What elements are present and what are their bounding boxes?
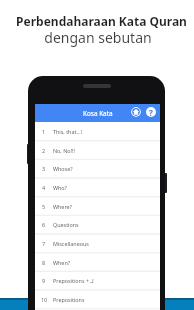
staticText: dengan sebutan: [44, 28, 152, 47]
staticText: 2: [42, 147, 46, 154]
button[interactable]: Home: [131, 107, 141, 117]
staticText: This, that...!: [53, 128, 83, 135]
staticText: Prepositions + لـ: [53, 277, 94, 284]
button[interactable]: 10: [35, 290, 160, 309]
button[interactable]: 1: [35, 122, 160, 141]
staticText: Kosa Kata: [83, 109, 113, 118]
staticText: 5: [42, 203, 46, 210]
staticText: When?: [53, 259, 71, 266]
button[interactable]: 7: [35, 234, 160, 253]
button[interactable]: 4: [35, 178, 160, 197]
staticText: 7: [42, 240, 46, 247]
button[interactable]: 6: [35, 215, 160, 234]
button[interactable]: 8: [35, 253, 160, 272]
staticText: 8: [42, 259, 46, 266]
button[interactable]: 5: [35, 197, 160, 216]
staticText: Prepositions: [53, 296, 85, 303]
staticText: Where?: [53, 203, 72, 210]
staticText: Miscellaneous: [53, 240, 89, 247]
staticText: 10: [41, 296, 48, 303]
staticText: 6: [42, 221, 46, 228]
staticText: Questions: [53, 221, 79, 228]
staticText: ?: [149, 107, 153, 117]
button[interactable]: Help: [146, 107, 156, 117]
button[interactable]: 3: [35, 159, 160, 178]
staticText: Whose?: [53, 165, 73, 172]
button[interactable]: 9: [35, 271, 160, 290]
staticText: Perbendaharaan Kata Quran: [16, 13, 187, 29]
staticText: 4: [42, 184, 46, 191]
staticText: 1: [42, 128, 46, 135]
button[interactable]: Kosa Kata: [35, 104, 160, 122]
button[interactable]: 2: [35, 141, 160, 160]
staticText: 9: [42, 277, 46, 284]
staticText: 3: [42, 165, 46, 172]
staticText: Who?: [53, 184, 67, 191]
staticText: No, No!!!: [53, 147, 75, 154]
